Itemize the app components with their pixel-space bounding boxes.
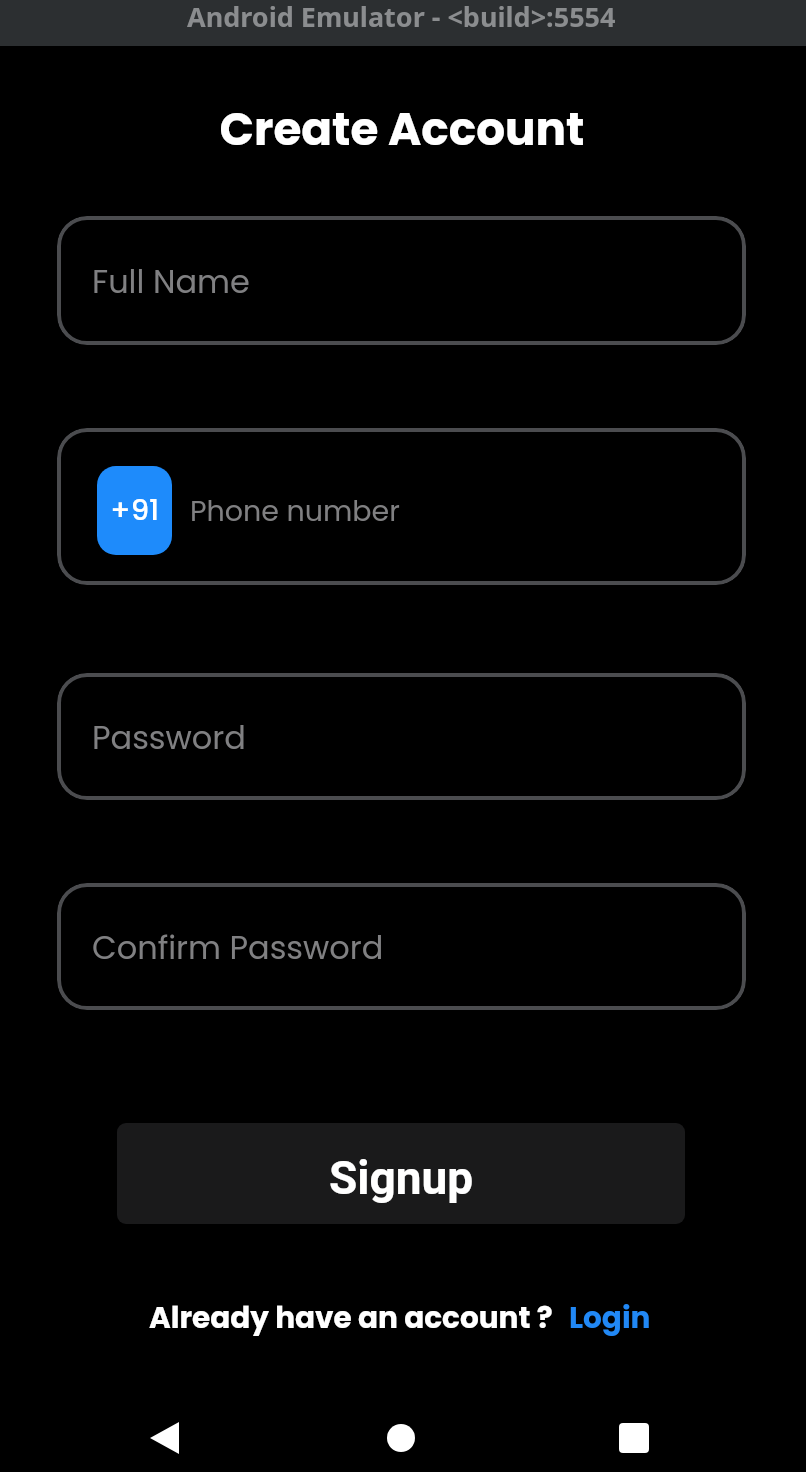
staticText: Phone number <box>190 491 400 531</box>
button[interactable]: Login <box>569 1297 651 1338</box>
staticText: Already have an account ? <box>149 1297 553 1338</box>
button[interactable]: Signup <box>117 1123 685 1224</box>
staticText: Confirm Password <box>92 925 384 970</box>
button[interactable]: Confirm Password <box>57 883 746 1010</box>
button[interactable]: Home <box>367 1404 435 1472</box>
button[interactable]: +91 <box>57 428 746 585</box>
staticText: +91 <box>110 490 160 531</box>
staticText: Password <box>92 715 246 760</box>
button[interactable]: Full Name <box>57 216 746 345</box>
staticText: Create Account <box>0 97 805 160</box>
staticText: Android Emulator - <build>:5554 <box>187 0 616 35</box>
button[interactable]: Recent apps <box>600 1404 668 1472</box>
staticText: Full Name <box>92 259 250 304</box>
button[interactable]: Password <box>57 673 746 800</box>
staticText: Login <box>569 1297 651 1338</box>
staticText: Signup <box>329 1151 474 1205</box>
button[interactable]: +91 <box>97 466 172 555</box>
button[interactable]: Back <box>130 1404 198 1472</box>
